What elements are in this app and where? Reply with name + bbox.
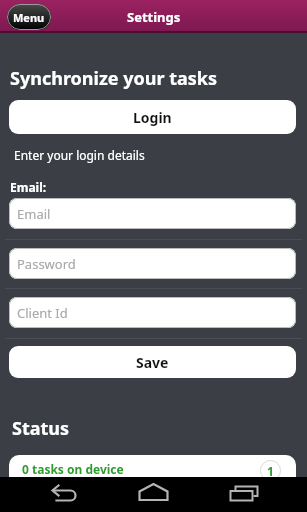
staticText: Login xyxy=(133,108,172,127)
staticText: 1 xyxy=(267,463,274,479)
button[interactable]: Save xyxy=(9,346,296,378)
button[interactable] xyxy=(205,477,307,512)
button[interactable]: 0 tasks on device xyxy=(9,455,296,495)
staticText: 0 tasks on device xyxy=(22,461,124,477)
staticText: Client Id xyxy=(17,304,68,322)
staticText: Email xyxy=(17,205,51,223)
staticText: Save xyxy=(136,353,169,372)
staticText: Menu xyxy=(13,10,45,25)
staticText: Enter your login details xyxy=(14,147,145,163)
staticText: Status xyxy=(12,416,70,441)
staticText: Password xyxy=(17,255,76,273)
button[interactable]: Client Id xyxy=(9,297,296,328)
staticText: Synchronize your tasks xyxy=(10,66,217,91)
button[interactable]: Password xyxy=(9,248,296,279)
button[interactable] xyxy=(0,477,103,512)
staticText: Settings xyxy=(127,8,181,26)
button[interactable]: Menu xyxy=(7,4,51,30)
button[interactable]: Login xyxy=(9,100,296,134)
button[interactable] xyxy=(103,477,205,512)
staticText: Email: xyxy=(10,179,47,195)
button[interactable]: Email xyxy=(9,198,296,229)
